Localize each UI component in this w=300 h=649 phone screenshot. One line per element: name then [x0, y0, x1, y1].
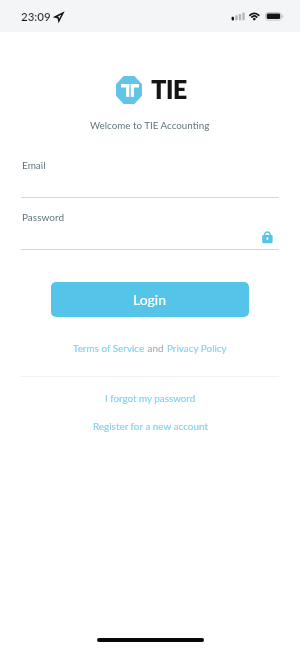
- button[interactable]: I forgot my password: [105, 392, 196, 404]
- staticText: 23:09: [21, 10, 51, 24]
- staticText: Welcome to TIE Accounting: [90, 119, 210, 131]
- staticText: Email: [22, 159, 46, 171]
- button[interactable]: Register for a new account: [93, 420, 208, 432]
- staticText: TIE: [151, 74, 187, 105]
- button[interactable]: Privacy Policy: [167, 342, 227, 354]
- staticText: Register for a new account: [93, 420, 208, 432]
- button[interactable]: Show password: [260, 228, 275, 244]
- button[interactable]: Login: [51, 282, 249, 317]
- staticText: and: [145, 342, 167, 354]
- button[interactable]: Terms of Service: [73, 342, 145, 354]
- staticText: Password: [22, 211, 64, 223]
- staticText: Login: [133, 291, 167, 308]
- staticText: I forgot my password: [105, 392, 196, 404]
